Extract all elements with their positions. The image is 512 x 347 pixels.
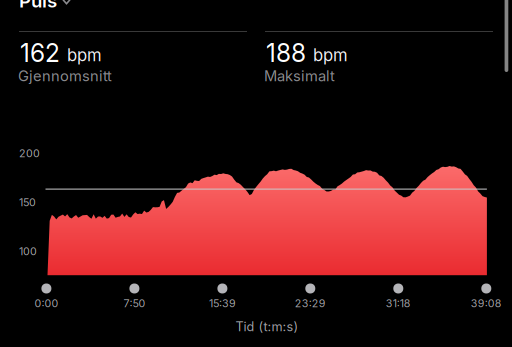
staticText: 15:39 <box>209 297 236 310</box>
staticText: 7:50 <box>123 297 145 310</box>
staticText: 162 <box>20 38 60 68</box>
staticText: 100 <box>19 245 37 258</box>
staticText: 200 <box>19 147 40 160</box>
staticText: 0:00 <box>34 297 58 310</box>
button[interactable]: Puls <box>19 0 70 12</box>
staticText: 188 <box>266 38 306 68</box>
staticText: 150 <box>19 196 36 209</box>
staticText: 23:29 <box>295 297 326 310</box>
staticText: Tid (t:m:s) <box>235 319 298 334</box>
staticText: bpm <box>67 45 102 65</box>
staticText: 39:08 <box>471 297 502 310</box>
staticText: 31:18 <box>386 297 411 310</box>
staticText: Puls <box>19 0 57 12</box>
staticText: Maksimalt <box>264 67 335 85</box>
staticText: bpm <box>313 45 348 65</box>
staticText: Gjennomsnitt <box>18 67 112 85</box>
